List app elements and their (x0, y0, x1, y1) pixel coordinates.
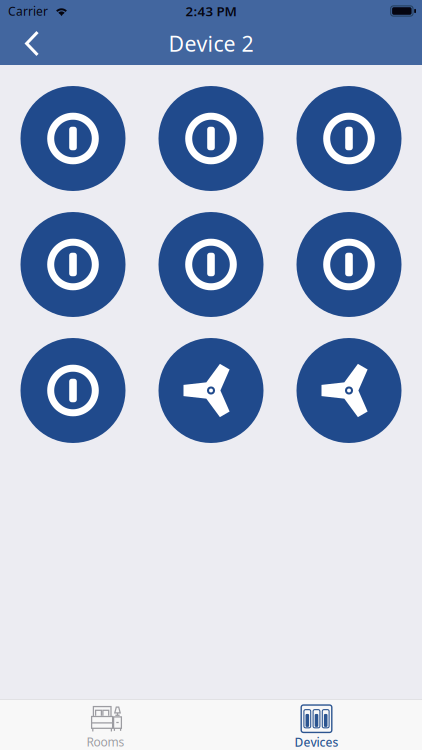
button[interactable]: Device power 3 (296, 86, 401, 191)
staticText: Device 2 (168, 29, 253, 58)
staticText: 2:43 PM (185, 2, 236, 20)
button[interactable]: Devices (211, 700, 422, 750)
staticText: Devices (294, 734, 338, 750)
button[interactable]: Device power 7 (20, 338, 125, 443)
button[interactable]: Rooms (0, 700, 211, 750)
button[interactable]: Fan 2 (296, 338, 401, 443)
staticText: Carrier (8, 3, 48, 19)
staticText: Rooms (86, 734, 124, 750)
button[interactable]: Back (0, 22, 53, 65)
button[interactable]: Device power 2 (158, 86, 263, 191)
button[interactable]: Device power 4 (20, 212, 125, 317)
button[interactable]: Device power 1 (20, 86, 125, 191)
button[interactable]: Device power 6 (296, 212, 401, 317)
button[interactable]: Fan 1 (158, 338, 263, 443)
button[interactable]: Device power 5 (158, 212, 263, 317)
